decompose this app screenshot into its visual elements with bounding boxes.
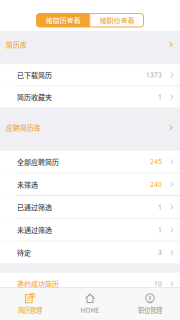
button[interactable]: 未筛选 [0,173,180,195]
staticText: 未筛选 [17,179,38,189]
staticText: 未通过筛选 [17,225,52,235]
staticText: 按职位查看 [99,15,134,25]
staticText: 1 [158,203,162,212]
button[interactable]: 已下载简历 [0,64,180,86]
button[interactable]: 全部应聘简历 [0,151,180,173]
staticText: 1373 [146,70,162,79]
button[interactable]: 待定 [0,241,180,264]
button[interactable]: 简历收藏夹 [0,86,180,108]
staticText: 按简历查看 [45,15,80,25]
staticText: 已通过筛选 [17,202,52,212]
button[interactable]: 已通过筛选 [0,196,180,218]
staticText: 全部应聘简历 [17,157,59,167]
button[interactable]: 简历管理 [0,288,60,320]
button[interactable]: HOME [60,288,120,320]
staticText: 简历库 [6,40,27,49]
staticText: 3 [158,248,162,257]
staticText: 240 [150,180,162,189]
staticText: 简历管理 [18,305,42,315]
button[interactable]: 邀约成功简历 [0,273,180,295]
staticText: 245 [150,157,162,166]
staticText: 职位管理 [138,305,162,315]
staticText: 1 [158,92,162,101]
button[interactable]: 未通过筛选 [0,219,180,241]
button[interactable]: 按职位查看 [90,13,143,27]
staticText: 待定 [17,247,31,257]
staticText: 已下载简历 [17,70,52,80]
staticText: 10 [154,279,162,288]
staticText: 邀约成功简历 [17,279,59,289]
staticText: 简历收藏夹 [17,92,52,102]
button[interactable]: 按简历查看 [36,13,89,27]
staticText: HOME [80,305,99,315]
button[interactable]: 职位管理 [120,288,180,320]
staticText: 应聘简历库 [6,123,41,133]
staticText: 1 [158,225,162,234]
